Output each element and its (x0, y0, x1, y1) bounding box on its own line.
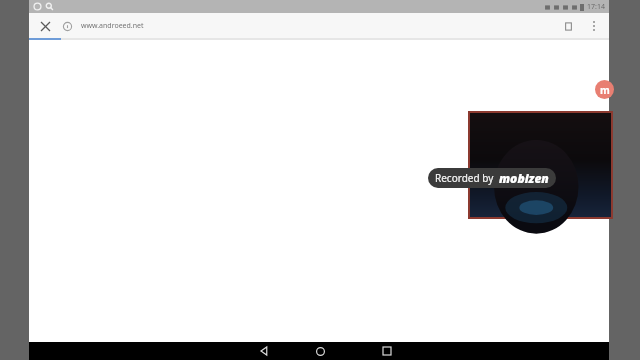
staticText: m (600, 83, 610, 97)
staticText: mobizen (499, 170, 549, 186)
button[interactable]: Recent apps (377, 342, 397, 360)
button[interactable]: More options (584, 16, 604, 36)
button[interactable]: Home (310, 342, 330, 360)
staticText: www.androeed.net (81, 21, 144, 31)
button[interactable]: Back (255, 342, 275, 360)
button[interactable]: Close (35, 16, 55, 36)
staticText: 17:14 (587, 2, 605, 12)
staticText: Recorded by (435, 171, 494, 185)
button[interactable]: Bookmark (558, 16, 578, 36)
button[interactable]: Site information (57, 16, 77, 36)
